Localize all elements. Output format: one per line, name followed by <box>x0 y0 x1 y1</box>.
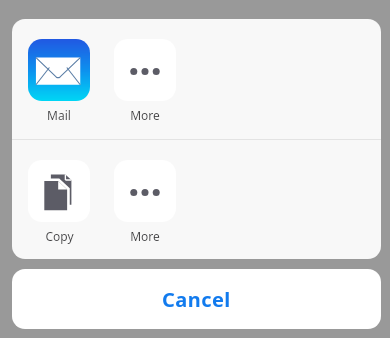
button[interactable]: Mail <box>16 19 102 139</box>
staticText: Mail <box>47 107 71 123</box>
staticText: Copy <box>45 228 74 244</box>
staticText: More <box>130 107 160 123</box>
button[interactable]: Cancel <box>12 269 381 329</box>
staticText: Cancel <box>162 286 231 313</box>
staticText: More <box>130 228 160 244</box>
button[interactable]: Copy <box>16 140 102 259</box>
button[interactable]: More <box>102 140 188 259</box>
button[interactable]: More <box>102 19 188 139</box>
